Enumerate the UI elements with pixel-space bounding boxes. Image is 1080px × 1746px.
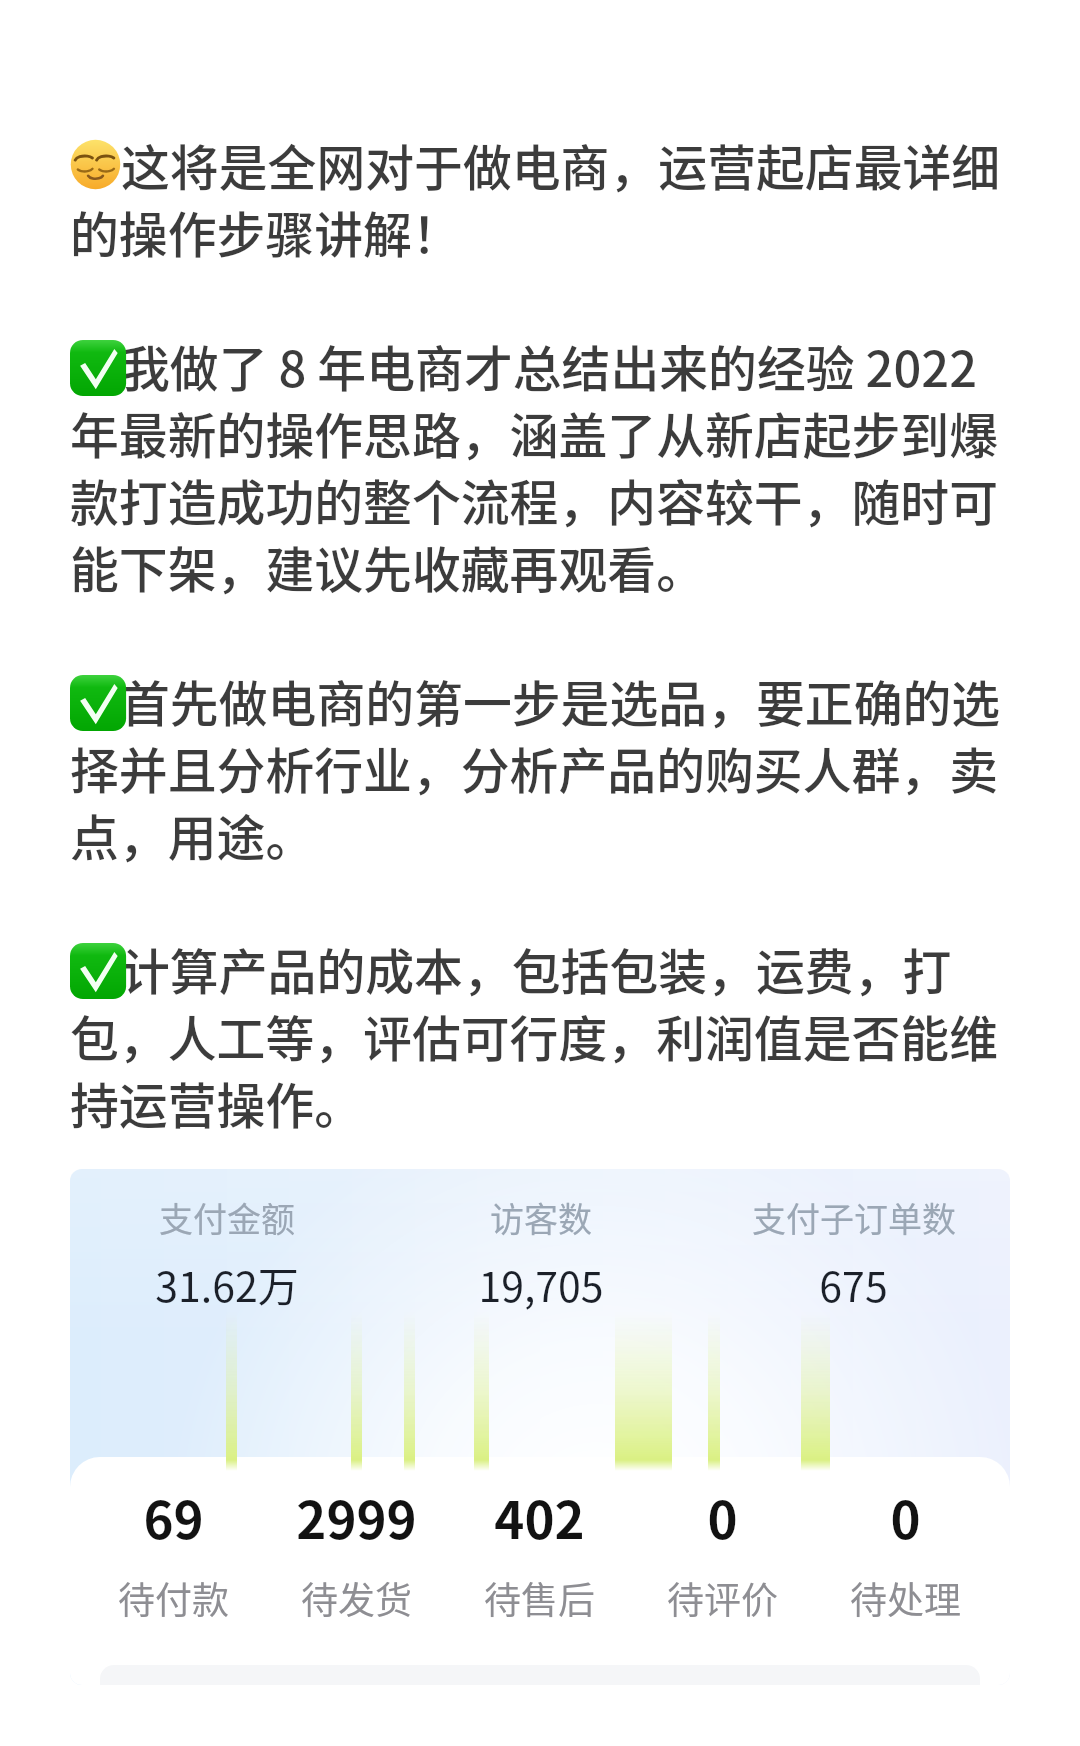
staticText: 支付金额 bbox=[159, 1193, 295, 1242]
button[interactable]: 2999 bbox=[265, 1480, 448, 1625]
staticText: 402 bbox=[494, 1480, 585, 1554]
staticText: 待评价 bbox=[667, 1571, 778, 1625]
button[interactable]: 69 bbox=[82, 1480, 265, 1625]
staticText: 支付子订单数 bbox=[752, 1193, 956, 1242]
staticText: 待处理 bbox=[850, 1571, 961, 1625]
staticText: 19,705 bbox=[478, 1254, 604, 1313]
staticText: 31.62万 bbox=[155, 1254, 299, 1313]
button[interactable]: 支付金额 bbox=[70, 1193, 384, 1313]
staticText: 待售后 bbox=[484, 1571, 595, 1625]
staticText: 待发货 bbox=[301, 1571, 412, 1625]
staticText: 待付款 bbox=[118, 1571, 229, 1625]
button[interactable]: 402 bbox=[448, 1480, 631, 1625]
staticText: 69 bbox=[143, 1480, 204, 1554]
staticText: 2999 bbox=[296, 1480, 417, 1554]
staticText: 675 bbox=[819, 1254, 888, 1313]
button[interactable]: 0 bbox=[631, 1480, 814, 1625]
button[interactable]: 支付子订单数 bbox=[697, 1193, 1010, 1313]
button[interactable]: 0 bbox=[814, 1480, 997, 1625]
staticText: 😌这将是全网对于做电商，运营起店最详细的操作步骤讲解！ ✅我做了 8 年电商才总… bbox=[70, 129, 1008, 1138]
button[interactable]: 访客数 bbox=[384, 1193, 697, 1313]
staticText: 访客数 bbox=[490, 1193, 592, 1242]
staticText: 0 bbox=[890, 1480, 921, 1554]
staticText: 0 bbox=[707, 1480, 738, 1554]
